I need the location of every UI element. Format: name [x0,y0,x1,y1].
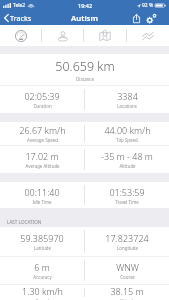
staticText: Tracks [10,13,32,23]
staticText: 92 % [142,2,154,9]
staticText: Course [120,274,135,280]
staticText: 26.67 km/h [19,124,66,136]
staticText: Accuracy [33,274,52,280]
staticText: Altitude [119,298,136,300]
staticText: 59.385970 [20,232,64,244]
staticText: Top Speed [116,137,138,143]
staticText: Autism [71,13,98,24]
staticText: 50.659 km [55,58,115,75]
staticText: 01:53:59 [109,186,145,198]
staticText: Average Speed [27,137,58,143]
staticText: WNW [116,261,139,273]
staticText: Tele2 [13,2,26,9]
staticText: 17.823724 [105,232,149,244]
button[interactable]: Share [130,11,143,25]
staticText: 02:05:39 [24,90,60,102]
button[interactable]: Settings [143,11,160,25]
button[interactable]: People [42,25,83,46]
button[interactable]: Map [84,25,126,46]
staticText: Travel Time [115,199,139,205]
button[interactable]: Tracks [2,11,34,25]
button[interactable]: Chart [127,25,169,46]
staticText: Idle Time [32,199,52,205]
staticText: 00:11:40 [24,186,60,198]
staticText: 3384 [117,90,138,102]
staticText: Longitude [117,245,138,251]
button[interactable]: Dashboard [0,25,41,46]
staticText: Altitude [119,163,136,169]
staticText: Locations [117,103,137,109]
staticText: Average Altitude [25,163,60,169]
staticText: 44.00 km/h [104,124,151,136]
staticText: -35 m - 48 m [101,150,153,162]
staticText: Latitude [34,245,51,251]
staticText: Speed [36,298,49,300]
staticText: LAST LOCATION [7,219,42,225]
staticText: 17.02 m [25,150,59,162]
staticText: 1.30 km/h [22,285,63,297]
staticText: 19:42 [78,2,93,9]
staticText: Duration [33,103,52,109]
staticText: Distance [76,76,94,82]
staticText: 38.15 m [110,285,144,297]
staticText: 6 m [34,261,50,273]
